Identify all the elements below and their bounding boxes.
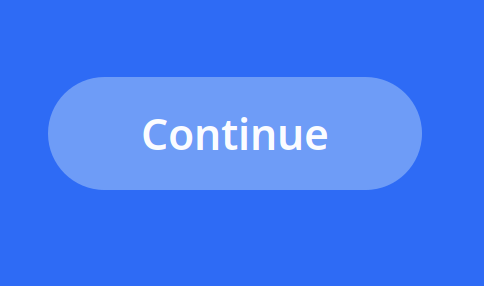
staticText: Continue: [141, 105, 329, 162]
button[interactable]: Continue: [48, 77, 422, 190]
